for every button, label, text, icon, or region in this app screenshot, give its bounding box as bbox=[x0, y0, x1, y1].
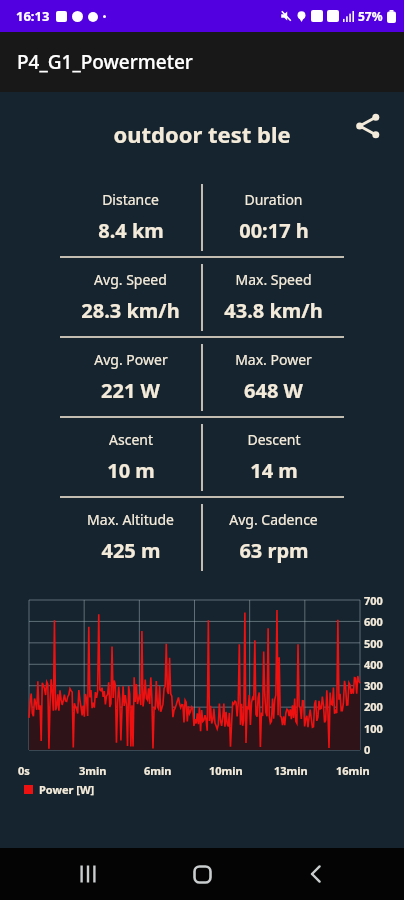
staticText: 63 rpm bbox=[239, 537, 309, 564]
button[interactable]: Share bbox=[348, 106, 388, 146]
staticText: 43.8 km/h bbox=[224, 297, 323, 324]
button[interactable]: Avg. Cadence bbox=[203, 498, 344, 576]
staticText: Max. Speed bbox=[235, 270, 312, 289]
staticText: Descent bbox=[247, 430, 301, 449]
staticText: 0 bbox=[364, 742, 371, 757]
button[interactable]: Descent bbox=[203, 418, 344, 496]
staticText: 700 bbox=[364, 593, 383, 608]
staticText: 300 bbox=[364, 678, 383, 693]
button[interactable]: Back bbox=[290, 848, 342, 900]
staticText: 100 bbox=[364, 721, 383, 736]
button[interactable]: Recent apps bbox=[62, 848, 114, 900]
button[interactable]: Avg. Power bbox=[60, 338, 201, 416]
staticText: 14 m bbox=[250, 457, 298, 484]
staticText: Distance bbox=[102, 190, 159, 209]
staticText: 16min bbox=[336, 763, 370, 778]
staticText: outdoor test ble bbox=[113, 119, 291, 149]
button[interactable]: Max. Altitude bbox=[60, 498, 201, 576]
button[interactable]: Home bbox=[176, 848, 228, 900]
button[interactable]: Ascent bbox=[60, 418, 201, 496]
staticText: Avg. Speed bbox=[94, 270, 167, 289]
staticText: 16:13 bbox=[16, 7, 50, 25]
button[interactable]: Distance bbox=[60, 178, 201, 256]
staticText: Max. Altitude bbox=[87, 510, 174, 529]
staticText: 400 bbox=[364, 657, 383, 672]
button[interactable]: Max. Power bbox=[203, 338, 344, 416]
staticText: 3min bbox=[79, 763, 107, 778]
staticText: Ascent bbox=[109, 430, 153, 449]
staticText: 28.3 km/h bbox=[81, 297, 180, 324]
staticText: 425 m bbox=[101, 537, 161, 564]
staticText: 00:17 h bbox=[239, 217, 309, 244]
staticText: 6min bbox=[144, 763, 172, 778]
staticText: 13min bbox=[274, 763, 308, 778]
staticText: Avg. Power bbox=[94, 350, 168, 369]
staticText: 8.4 km bbox=[98, 217, 164, 244]
staticText: 648 W bbox=[244, 377, 303, 404]
staticText: P4_G1_Powermeter bbox=[17, 49, 193, 75]
staticText: 200 bbox=[364, 699, 383, 714]
staticText: 500 bbox=[364, 636, 383, 651]
button[interactable]: Max. Speed bbox=[203, 258, 344, 336]
staticText: 10 m bbox=[107, 457, 155, 484]
staticText: Avg. Cadence bbox=[229, 510, 318, 529]
staticText: 0s bbox=[18, 763, 30, 778]
button[interactable]: Avg. Speed bbox=[60, 258, 201, 336]
staticText: Power [W] bbox=[39, 782, 95, 797]
staticText: 57% bbox=[358, 8, 383, 24]
staticText: 600 bbox=[364, 614, 383, 629]
button[interactable]: Duration bbox=[203, 178, 344, 256]
staticText: Max. Power bbox=[235, 350, 312, 369]
staticText: 221 W bbox=[101, 377, 160, 404]
staticText: 10min bbox=[209, 763, 243, 778]
staticText: Duration bbox=[244, 190, 303, 209]
